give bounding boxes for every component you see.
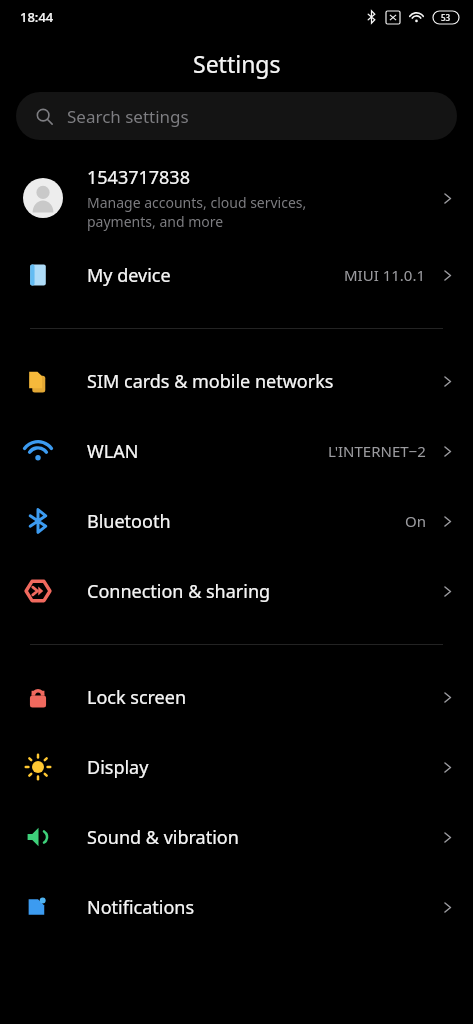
other: Notifications (25, 894, 51, 920)
staticText: L'INTERNET−2 (328, 441, 426, 461)
button[interactable]: Sound and vibration (0, 802, 473, 872)
other: Display (25, 754, 51, 780)
button[interactable]: 1543717838 (0, 156, 473, 240)
staticText: 18:44 (20, 8, 54, 26)
button[interactable]: SIM cards (0, 346, 473, 416)
other: Open (440, 191, 455, 206)
staticText: 1543717838 (87, 165, 190, 190)
button[interactable]: Connection and sharing (0, 556, 473, 626)
button[interactable]: WLAN (0, 416, 473, 486)
other: My device (25, 262, 51, 288)
staticText: Settings (193, 48, 281, 79)
button[interactable]: Lock screen (0, 662, 473, 732)
staticText: Sound & vibration (87, 825, 440, 850)
other: Open (440, 268, 455, 283)
staticText: On (405, 511, 426, 531)
staticText: WLAN (87, 439, 328, 464)
button[interactable]: Search settings (16, 92, 457, 140)
other: Open (440, 514, 455, 529)
other: Open (440, 444, 455, 459)
staticText: Search settings (67, 105, 189, 128)
other: Connection and sharing (25, 578, 51, 604)
other: WLAN (25, 438, 51, 464)
other: Open (440, 760, 455, 775)
other: Open (440, 690, 455, 705)
other: Lock screen (25, 684, 51, 710)
button[interactable]: Display (0, 732, 473, 802)
staticText: Connection & sharing (87, 579, 440, 604)
staticText: Display (87, 755, 440, 780)
staticText: SIM cards & mobile networks (87, 369, 440, 394)
other: Open (440, 900, 455, 915)
button[interactable]: My device (0, 240, 473, 310)
staticText: Lock screen (87, 685, 440, 710)
staticText: MIUI 11.0.1 (344, 265, 426, 285)
button[interactable]: Bluetooth (0, 486, 473, 556)
other: Bluetooth (25, 508, 51, 534)
staticText: Manage accounts, cloud services, payment… (87, 193, 307, 231)
other: SIM cards (25, 368, 51, 394)
other: Sound and vibration (25, 824, 51, 850)
staticText: Notifications (87, 895, 440, 920)
other: Open (440, 374, 455, 389)
staticText: My device (87, 263, 344, 288)
other: Open (440, 584, 455, 599)
other: Open (440, 830, 455, 845)
staticText: Bluetooth (87, 509, 405, 534)
staticText: 53 (441, 12, 451, 23)
button[interactable]: Notifications (0, 872, 473, 942)
